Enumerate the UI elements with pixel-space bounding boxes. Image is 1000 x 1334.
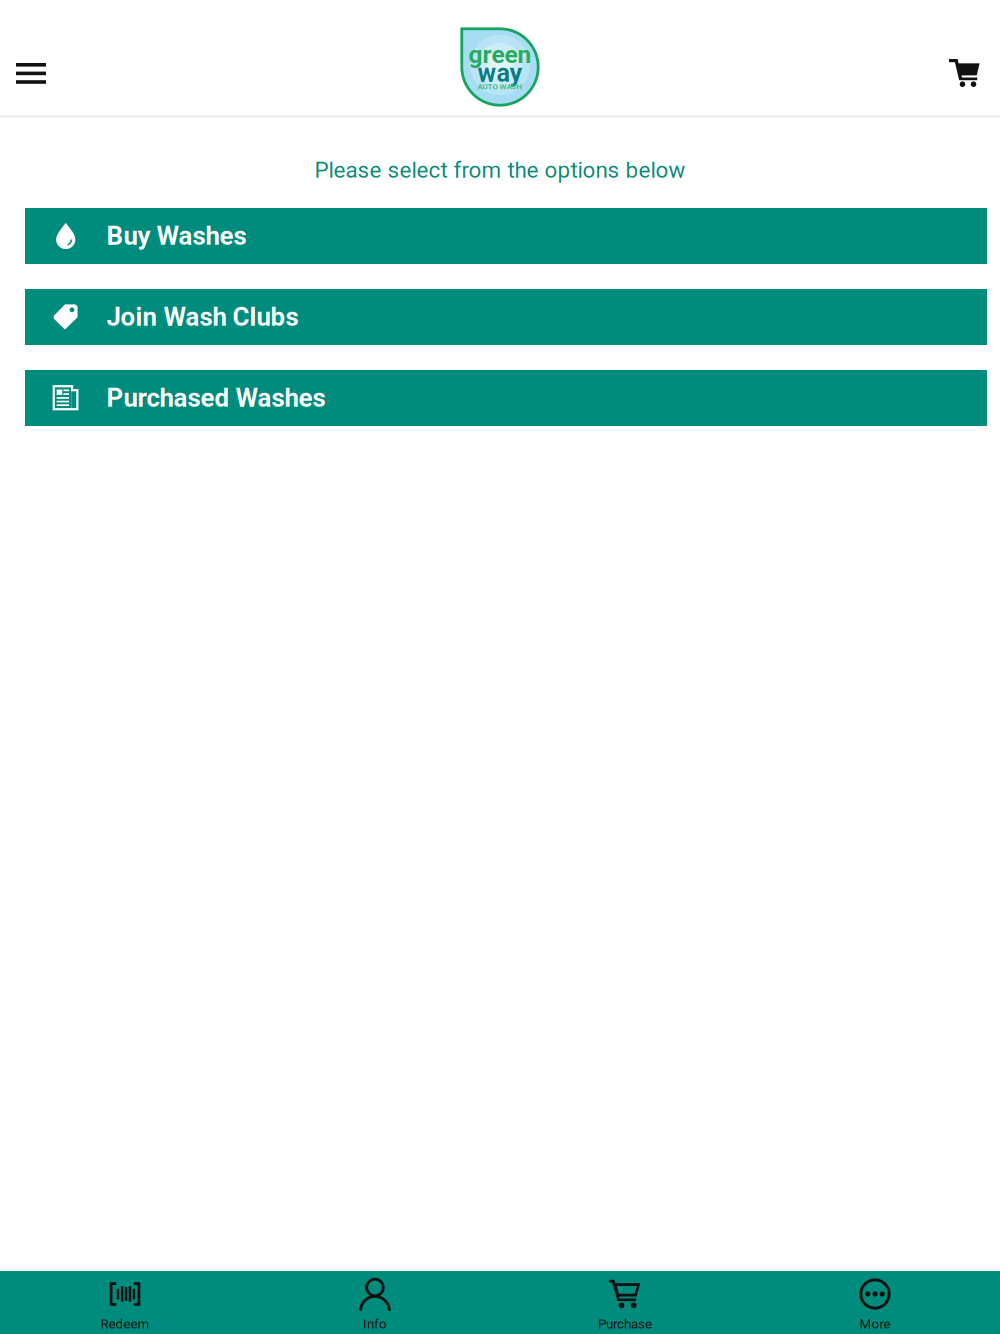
staticText: way xyxy=(477,58,522,88)
staticText: Purchased Washes xyxy=(106,383,325,413)
staticText: green xyxy=(468,40,531,69)
button[interactable]: Menu xyxy=(0,0,62,117)
button[interactable]: Redeem xyxy=(0,1271,250,1334)
button[interactable]: Purchased Washes xyxy=(25,370,987,426)
staticText: Info xyxy=(363,1316,387,1332)
staticText: AUTO WASH xyxy=(477,82,522,91)
button[interactable]: Purchase xyxy=(500,1271,750,1334)
button[interactable]: Cart xyxy=(932,0,1000,117)
staticText: Redeem xyxy=(100,1316,149,1332)
button[interactable]: More xyxy=(750,1271,1000,1334)
staticText: More xyxy=(859,1316,890,1332)
staticText: Join Wash Clubs xyxy=(106,302,298,332)
button[interactable]: Buy Washes xyxy=(25,208,987,264)
staticText: Please select from the options below xyxy=(314,157,685,183)
staticText: Buy Washes xyxy=(106,221,246,251)
button[interactable]: Join Wash Clubs xyxy=(25,289,987,345)
staticText: Purchase xyxy=(598,1316,652,1332)
button[interactable]: Info xyxy=(250,1271,500,1334)
